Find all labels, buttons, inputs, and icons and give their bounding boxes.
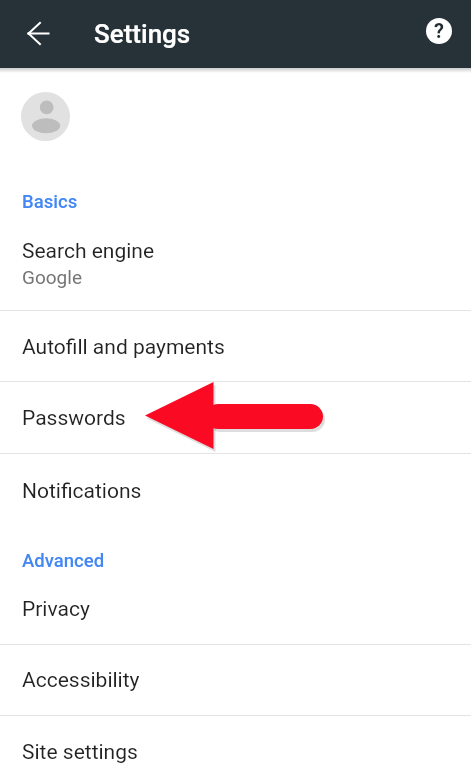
staticText: Autofill and payments bbox=[22, 335, 225, 360]
staticText: Accessibility bbox=[22, 668, 140, 693]
button[interactable]: Accessibility bbox=[0, 645, 471, 715]
button[interactable]: Notifications bbox=[0, 454, 471, 525]
staticText: Settings bbox=[94, 19, 191, 49]
staticText: Passwords bbox=[22, 406, 126, 431]
button[interactable]: Sign in to Chrome bbox=[0, 68, 471, 165]
staticText: Search engine bbox=[22, 239, 155, 264]
staticText: Basics bbox=[22, 191, 78, 213]
staticText: ? bbox=[434, 19, 444, 42]
button[interactable]: Navigate up bbox=[14, 9, 62, 57]
button[interactable]: Site settings bbox=[0, 716, 471, 782]
button[interactable]: Privacy bbox=[0, 575, 471, 644]
staticText: Notifications bbox=[22, 479, 142, 504]
staticText: Google bbox=[22, 266, 82, 288]
button[interactable]: Help and feedback bbox=[415, 7, 463, 55]
staticText: Site settings bbox=[22, 740, 138, 765]
staticText: Privacy bbox=[22, 597, 90, 622]
staticText: Advanced bbox=[22, 550, 105, 572]
button[interactable]: Search engine bbox=[0, 224, 471, 310]
button[interactable]: Autofill and payments bbox=[0, 311, 471, 381]
button[interactable]: Passwords bbox=[0, 382, 471, 453]
